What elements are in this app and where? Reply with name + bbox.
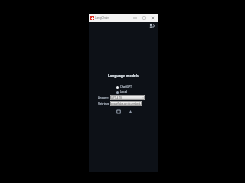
button[interactable]: snowflake-arctic-embed-s xyxy=(110,101,142,106)
staticText: LangChain xyxy=(95,16,109,20)
button[interactable]: Close xyxy=(148,14,157,22)
staticText: ChatGPT xyxy=(120,85,132,89)
staticText: Language models xyxy=(108,73,139,78)
staticText: snowflake-arctic-embed-s xyxy=(111,102,141,106)
button[interactable]: Local xyxy=(116,90,128,94)
button[interactable]: Maximize xyxy=(139,14,148,22)
button[interactable]: Minimize xyxy=(130,14,139,22)
staticText: Answer: xyxy=(98,96,109,100)
staticText: Retrieval: xyxy=(98,102,109,106)
button[interactable]: Account xyxy=(149,23,155,29)
staticText: Local xyxy=(120,90,128,94)
button[interactable]: GPT-4 7B xyxy=(110,95,145,100)
staticText: GPT-4 7B xyxy=(111,96,122,100)
button[interactable]: Upload xyxy=(128,109,133,114)
button[interactable]: Open folder xyxy=(116,109,121,114)
button[interactable]: ChatGPT xyxy=(116,85,132,89)
